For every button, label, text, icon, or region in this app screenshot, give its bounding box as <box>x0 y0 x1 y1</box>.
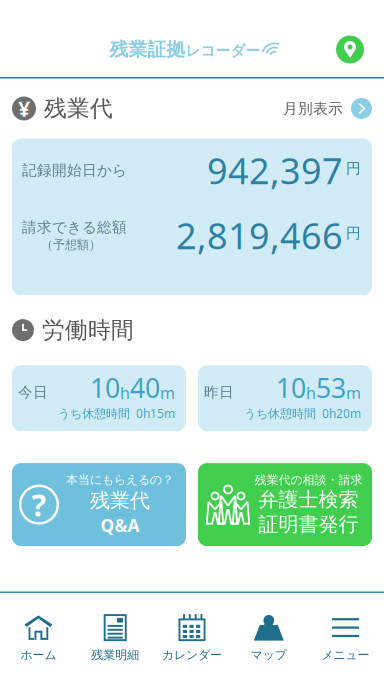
staticText: 月別表示 <box>283 99 343 117</box>
staticText: 10 <box>276 370 306 405</box>
staticText: うち休憩時間 0h15m <box>58 405 175 421</box>
staticText: レコーダー <box>185 42 260 60</box>
staticText: m <box>346 382 361 403</box>
staticText: ? <box>31 484 46 525</box>
staticText: メニュー <box>322 648 370 662</box>
staticText: h <box>306 382 316 403</box>
staticText: ホーム <box>20 648 56 662</box>
button[interactable]: 残業代の相談・請求 <box>198 463 372 546</box>
button[interactable]: 残業明細 <box>77 593 154 683</box>
staticText: 記録開始日から <box>22 161 127 179</box>
staticText: 40 <box>130 370 160 405</box>
staticText: マップ <box>251 648 287 662</box>
button[interactable]: 月別表示 <box>283 98 372 119</box>
staticText: 円 <box>346 159 361 177</box>
staticText: m <box>160 382 175 403</box>
staticText: （予想額） <box>41 237 101 252</box>
staticText: 証明書発行 <box>258 512 358 537</box>
button[interactable]: メニュー <box>307 593 384 683</box>
staticText: 円 <box>346 224 361 242</box>
staticText: 53 <box>316 370 346 405</box>
staticText: 2,819,466 <box>176 211 343 259</box>
staticText: 昨日 <box>204 383 234 401</box>
staticText: 10 <box>90 370 120 405</box>
staticText: 残業代 <box>44 95 113 122</box>
staticText: 残業明細 <box>91 648 139 662</box>
staticText: Q&A <box>100 514 139 537</box>
button[interactable]: 現在地 <box>328 27 372 71</box>
staticText: h <box>120 382 130 403</box>
staticText: 本当にもらえるの？ <box>66 472 174 487</box>
button[interactable]: ホーム <box>0 593 77 683</box>
button[interactable]: カレンダー <box>154 593 230 683</box>
staticText: 労働時間 <box>42 316 134 344</box>
button[interactable]: マップ <box>230 593 307 683</box>
staticText: 残業証拠 <box>109 38 185 61</box>
staticText: 今日 <box>18 383 48 401</box>
staticText: 942,397 <box>207 146 343 194</box>
staticText: うち休憩時間 0h20m <box>244 405 361 421</box>
staticText: 残業代 <box>90 488 150 513</box>
staticText: 残業代の相談・請求 <box>254 473 362 487</box>
staticText: ¥ <box>18 94 30 123</box>
button[interactable]: ? <box>12 463 186 546</box>
staticText: 弁護士検索 <box>258 487 358 512</box>
staticText: カレンダー <box>162 648 222 662</box>
staticText: 請求できる総額 <box>22 218 127 236</box>
